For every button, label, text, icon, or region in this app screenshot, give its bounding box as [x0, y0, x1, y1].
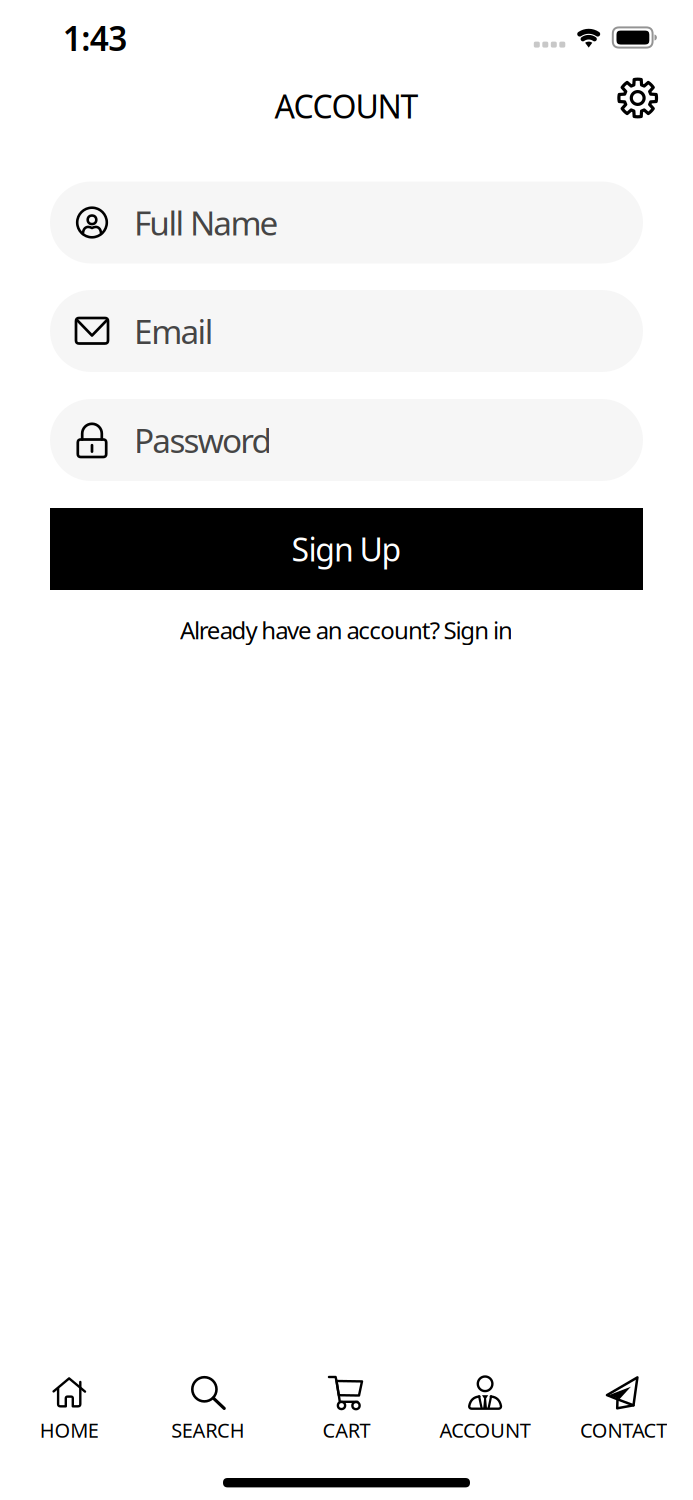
staticText: SEARCH	[171, 1417, 245, 1443]
staticText: CONTACT	[580, 1417, 667, 1443]
button[interactable]: CART	[277, 1368, 416, 1458]
staticText: ACCOUNT	[274, 85, 418, 127]
button[interactable]: Password	[50, 399, 643, 481]
button[interactable]: SEARCH	[139, 1368, 277, 1458]
staticText: HOME	[40, 1417, 99, 1443]
button[interactable]: Settings	[610, 70, 666, 126]
staticText: Full Name	[134, 200, 279, 245]
staticText: CART	[322, 1417, 370, 1443]
button[interactable]: Sign Up	[50, 508, 643, 590]
button[interactable]: HOME	[0, 1368, 139, 1458]
button[interactable]: Full Name	[50, 181, 643, 263]
button[interactable]: CONTACT	[554, 1368, 693, 1458]
button[interactable]: Email	[50, 290, 643, 372]
staticText: Password	[134, 418, 272, 462]
staticText: Email	[134, 309, 214, 353]
button[interactable]: Already have an account? Sign in	[180, 614, 513, 646]
staticText: 1:43	[63, 16, 127, 60]
staticText: Already have an account? Sign in	[180, 614, 513, 646]
staticText: ACCOUNT	[439, 1417, 531, 1443]
staticText: Sign Up	[292, 528, 401, 570]
button[interactable]: ACCOUNT	[416, 1368, 554, 1458]
